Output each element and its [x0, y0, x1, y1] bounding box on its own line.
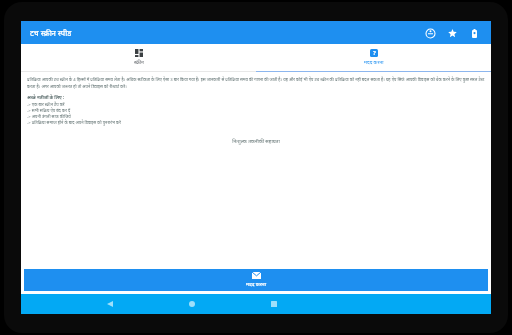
- button[interactable]: Recents: [265, 295, 283, 313]
- staticText: -> प्रतिक्रिया समाप्त होने के बाद अपने ड…: [27, 120, 121, 126]
- staticText: मदद करना: [246, 281, 267, 288]
- staticText: -> अपनी उंगली साफ कीजिये: [27, 114, 71, 120]
- button[interactable]: Battery: [466, 25, 482, 41]
- button[interactable]: Back: [101, 295, 119, 313]
- button[interactable]: ?: [256, 44, 491, 71]
- staticText: निःशुल्क तकनीकी सहायता: [27, 138, 485, 145]
- button[interactable]: स्क्रीन: [21, 44, 256, 71]
- button[interactable]: Home: [183, 295, 201, 313]
- staticText: स्क्रीन: [134, 59, 144, 66]
- staticText: ?: [373, 49, 376, 57]
- staticText: टच स्क्रीन स्पीड: [30, 28, 72, 38]
- staticText: -> सभी सक्रिय ऐप बंद कर दें: [27, 108, 71, 114]
- button[interactable]: मदद करना: [24, 269, 488, 291]
- staticText: मदद करना: [364, 59, 384, 66]
- staticText: अच्छे नतीजों के लिए :: [27, 94, 64, 100]
- button[interactable]: Feedback: [422, 25, 438, 41]
- staticText: -> एक बार स्क्रीन टैप करें: [27, 102, 65, 108]
- staticText: प्रतिक्रिया आपकी टच स्क्रीन के 4 हिस्सों…: [27, 77, 485, 89]
- button[interactable]: Rate: [444, 25, 460, 41]
